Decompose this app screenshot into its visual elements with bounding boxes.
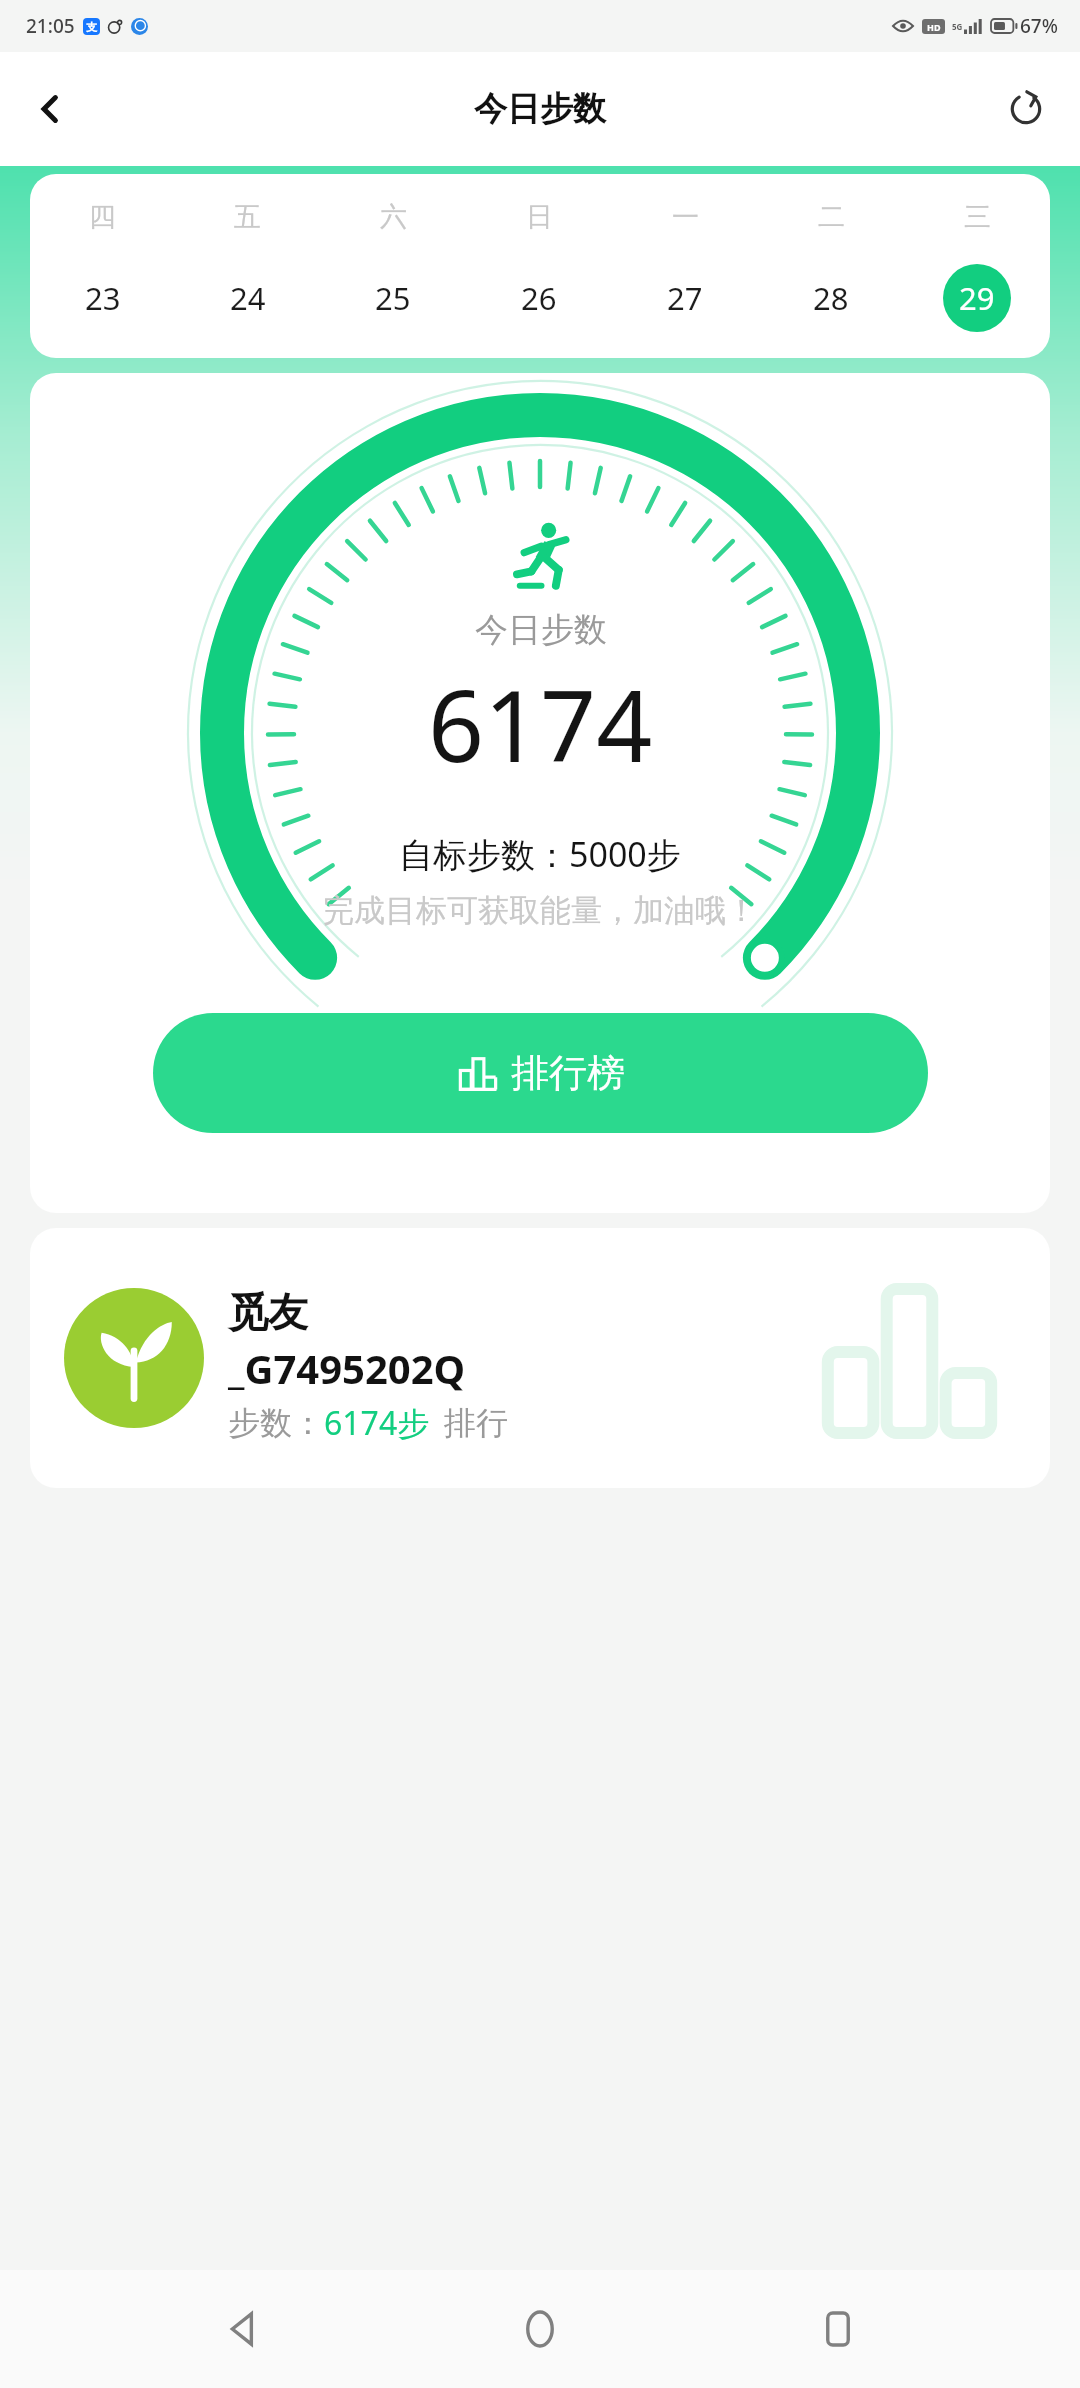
button[interactable]: 24 [214,264,282,332]
staticText: 27 [667,277,703,319]
button[interactable]: 最近任务 [783,2274,893,2384]
staticText: 6174 [428,657,653,790]
staticText: HD [927,21,941,33]
staticText: 5G [952,21,963,32]
button[interactable]: 28 [797,264,865,332]
staticText: 28 [813,277,849,319]
button[interactable]: 返回 [18,77,82,141]
staticText: 三 [964,200,991,234]
button[interactable]: 23 [69,264,137,332]
button[interactable]: 四 [30,174,1050,358]
staticText: 自标步数：5000步 [399,831,681,877]
button[interactable]: 觅友 [30,1228,1050,1488]
staticText: 29 [959,277,995,319]
staticText: _G7495202Q [228,1341,466,1395]
staticText: 觅友 [228,1287,308,1337]
staticText: 25 [375,277,411,319]
staticText: 日 [526,200,553,234]
staticText: 排行榜 [511,1049,625,1097]
button[interactable]: 27 [651,264,719,332]
staticText: 67% [1020,13,1058,39]
staticText: 排行 [444,1403,508,1443]
staticText: 步数： [228,1403,324,1443]
button[interactable]: 26 [505,264,573,332]
staticText: 今日步数 [474,88,606,130]
staticText: 24 [230,277,266,319]
button[interactable]: 排行榜 [153,1013,928,1133]
staticText: 四 [89,200,116,234]
staticText: 今日步数 [475,609,607,651]
button[interactable]: 主页 [485,2274,595,2384]
button[interactable]: 返回 [188,2274,298,2384]
staticText: 6174步 [324,1401,430,1445]
button[interactable]: 分享 [994,77,1058,141]
button[interactable]: 25 [359,264,427,332]
staticText: 一 [672,200,699,234]
staticText: 完成目标可获取能量，加油哦！ [323,891,757,930]
staticText: 二 [818,200,845,234]
staticText: 23 [85,277,121,319]
staticText: 26 [521,277,557,319]
staticText: 21:05 [26,13,75,39]
button[interactable]: 29 [943,264,1011,332]
staticText: 支 [86,20,97,34]
staticText: 六 [380,200,407,234]
staticText: 五 [234,200,261,234]
